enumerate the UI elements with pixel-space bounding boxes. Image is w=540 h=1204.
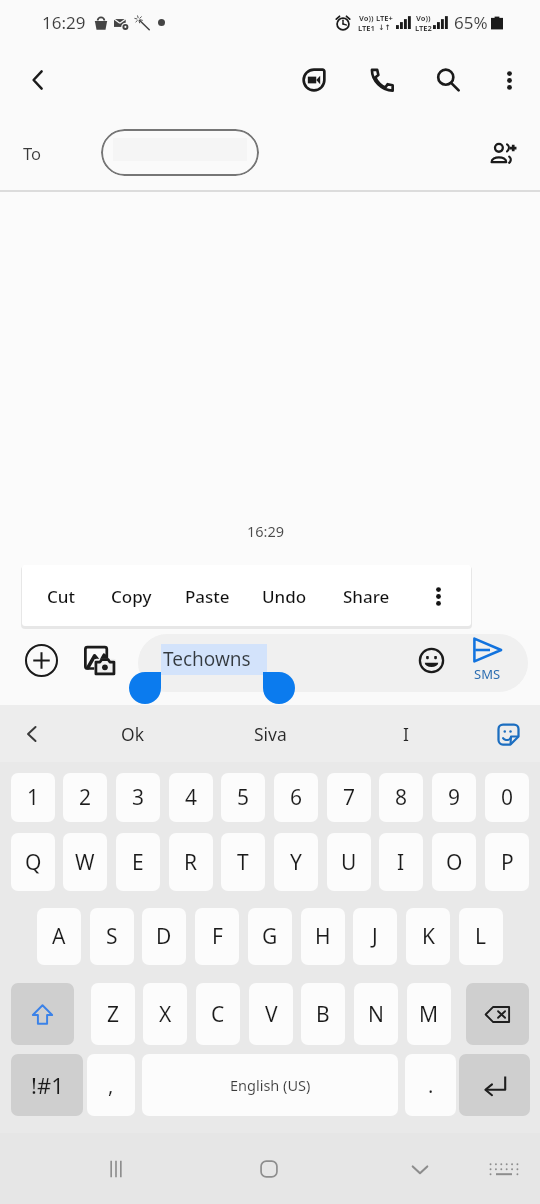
button[interactable]: T bbox=[221, 833, 265, 891]
button[interactable]: Shift bbox=[11, 983, 74, 1045]
staticText: 9 bbox=[448, 783, 461, 812]
staticText: F bbox=[212, 922, 223, 951]
staticText: 7 bbox=[343, 783, 356, 812]
staticText: LTE2 bbox=[415, 23, 432, 33]
button[interactable]: Q bbox=[11, 833, 55, 891]
button[interactable]: More options bbox=[487, 58, 531, 102]
button[interactable]: Recents bbox=[88, 1141, 144, 1197]
button[interactable]: Paste bbox=[167, 570, 247, 622]
staticText: N bbox=[368, 1000, 384, 1029]
button[interactable]: D bbox=[142, 908, 186, 965]
button[interactable]: 1 bbox=[11, 773, 55, 822]
button[interactable]: 4 bbox=[169, 773, 213, 822]
button[interactable]: Stickers bbox=[484, 710, 532, 758]
button[interactable]: Cut bbox=[22, 570, 101, 622]
button[interactable]: S bbox=[90, 908, 134, 965]
button[interactable]: U bbox=[327, 833, 371, 891]
staticText: Copy bbox=[111, 585, 152, 608]
button[interactable]: 0 bbox=[485, 773, 529, 822]
staticText: To bbox=[23, 142, 42, 164]
button[interactable]: . bbox=[405, 1054, 456, 1116]
button[interactable]: B bbox=[301, 983, 345, 1045]
button[interactable]: Video call bbox=[292, 58, 336, 102]
staticText: V bbox=[265, 1000, 278, 1029]
button[interactable]: E bbox=[116, 833, 160, 891]
button[interactable] bbox=[101, 129, 259, 176]
button[interactable]: English (US) bbox=[142, 1054, 398, 1116]
button[interactable]: 7 bbox=[327, 773, 371, 822]
button[interactable]: 8 bbox=[379, 773, 423, 822]
staticText: 16:29 bbox=[42, 11, 86, 34]
button[interactable]: P bbox=[485, 833, 529, 891]
button[interactable]: Hide keyboard bbox=[392, 1141, 448, 1197]
button[interactable]: More bbox=[414, 572, 462, 620]
button[interactable]: Emoji bbox=[409, 638, 453, 682]
staticText: , bbox=[108, 1072, 114, 1099]
button[interactable]: Gallery bbox=[78, 638, 122, 682]
button[interactable]: Backspace bbox=[466, 983, 529, 1045]
button[interactable]: Call bbox=[360, 58, 404, 102]
button[interactable]: Enter bbox=[459, 1054, 530, 1116]
button[interactable]: I bbox=[379, 833, 423, 891]
staticText: I bbox=[403, 722, 409, 746]
button[interactable]: V bbox=[249, 983, 293, 1045]
button[interactable]: Search bbox=[426, 58, 470, 102]
button[interactable]: Add attachment bbox=[19, 638, 63, 682]
staticText: LTE+ bbox=[376, 13, 393, 23]
staticText: ↓↑ bbox=[378, 23, 391, 32]
staticText: A bbox=[52, 922, 66, 951]
button[interactable]: O bbox=[432, 833, 476, 891]
button[interactable]: 9 bbox=[432, 773, 476, 822]
button[interactable]: N bbox=[354, 983, 398, 1045]
button[interactable]: Z bbox=[91, 983, 135, 1045]
button[interactable]: Ok bbox=[73, 705, 193, 762]
button[interactable]: Undo bbox=[244, 570, 324, 622]
staticText: 5 bbox=[237, 783, 250, 812]
staticText: Undo bbox=[262, 585, 307, 608]
button[interactable]: R bbox=[169, 833, 213, 891]
staticText: G bbox=[262, 922, 278, 951]
staticText: 1 bbox=[27, 783, 40, 812]
staticText: English (US) bbox=[230, 1075, 311, 1095]
button[interactable]: H bbox=[301, 908, 345, 965]
button[interactable]: 3 bbox=[116, 773, 160, 822]
button[interactable]: K bbox=[406, 908, 450, 965]
button[interactable]: 6 bbox=[274, 773, 318, 822]
staticText: 8 bbox=[395, 783, 408, 812]
button[interactable]: I bbox=[346, 705, 466, 762]
button[interactable]: Send SMS bbox=[457, 637, 517, 691]
button[interactable]: Copy bbox=[91, 570, 171, 622]
button[interactable]: L bbox=[459, 908, 503, 965]
button[interactable]: Previous suggestion bbox=[8, 710, 56, 758]
button[interactable]: Home bbox=[241, 1141, 297, 1197]
button[interactable]: A bbox=[37, 908, 81, 965]
staticText: 0 bbox=[501, 783, 514, 812]
staticText: W bbox=[75, 848, 95, 877]
staticText: 3 bbox=[132, 783, 145, 812]
button[interactable]: G bbox=[248, 908, 292, 965]
staticText: Z bbox=[107, 1000, 120, 1029]
button[interactable]: Back bbox=[16, 58, 60, 102]
button[interactable]: Switch keyboard bbox=[476, 1141, 532, 1197]
button[interactable]: F bbox=[195, 908, 239, 965]
staticText: P bbox=[501, 848, 514, 877]
staticText: 4 bbox=[185, 783, 198, 812]
button[interactable]: Share bbox=[326, 570, 406, 622]
button[interactable]: J bbox=[353, 908, 397, 965]
button[interactable]: Y bbox=[274, 833, 318, 891]
button[interactable]: X bbox=[143, 983, 187, 1045]
button[interactable]: Siva bbox=[210, 705, 330, 762]
button[interactable]: 5 bbox=[221, 773, 265, 822]
staticText: Vo)) bbox=[359, 13, 374, 23]
button[interactable]: Add recipient bbox=[481, 131, 525, 175]
button[interactable]: 2 bbox=[63, 773, 107, 822]
button[interactable]: C bbox=[196, 983, 240, 1045]
staticText: X bbox=[159, 1000, 172, 1029]
button[interactable]: W bbox=[63, 833, 107, 891]
button[interactable]: , bbox=[87, 1054, 135, 1116]
button[interactable]: M bbox=[407, 983, 451, 1045]
staticText: B bbox=[316, 1000, 330, 1029]
staticText: SMS bbox=[474, 665, 501, 683]
button[interactable]: !#1 bbox=[11, 1054, 83, 1116]
staticText: Cut bbox=[47, 585, 75, 608]
